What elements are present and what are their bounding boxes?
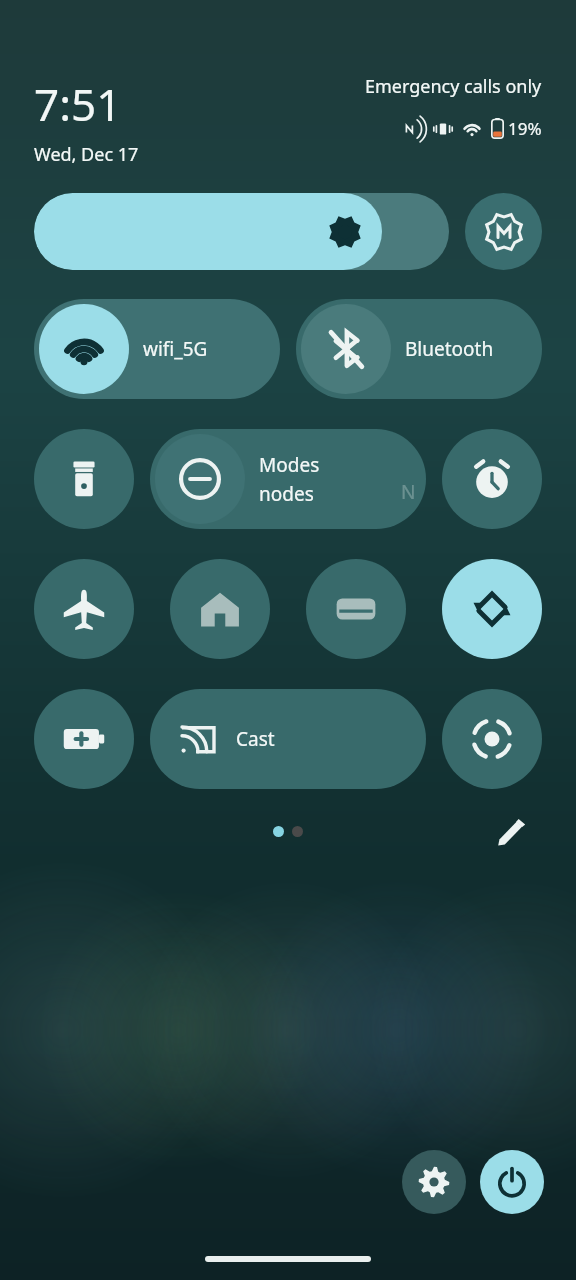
button[interactable]: Edit tiles: [490, 811, 534, 851]
staticText: N: [401, 479, 416, 505]
button[interactable]: Bluetooth: [296, 299, 542, 399]
staticText: Bluetooth: [405, 336, 494, 362]
button[interactable]: Auto rotate: [442, 559, 542, 659]
button[interactable]: Home: [170, 559, 270, 659]
button[interactable]: wifi_5G: [34, 299, 280, 399]
button[interactable]: Modes: [150, 429, 426, 529]
button[interactable]: Power: [480, 1150, 544, 1214]
button[interactable]: Alarm: [442, 429, 542, 529]
staticText: 7:51: [34, 74, 122, 134]
button[interactable]: Settings: [402, 1150, 466, 1214]
staticText: Emergency calls only: [365, 74, 542, 99]
staticText: wifi_5G: [143, 336, 208, 362]
button[interactable]: Flashlight: [34, 429, 134, 529]
staticText: Wed, Dec 17: [34, 142, 139, 167]
button[interactable]: Screen record: [442, 689, 542, 789]
button[interactable]: Auto brightness mode: [465, 193, 542, 270]
staticText: nodes: [259, 481, 314, 507]
button[interactable]: Airplane mode: [34, 559, 134, 659]
button[interactable]: Brightness: [34, 193, 449, 270]
staticText: 19%: [508, 117, 542, 140]
staticText: Cast: [236, 726, 275, 752]
button[interactable]: Cast: [150, 689, 426, 789]
button[interactable]: Battery saver: [34, 689, 134, 789]
button[interactable]: Wallet: [306, 559, 406, 659]
staticText: Modes: [259, 452, 320, 478]
